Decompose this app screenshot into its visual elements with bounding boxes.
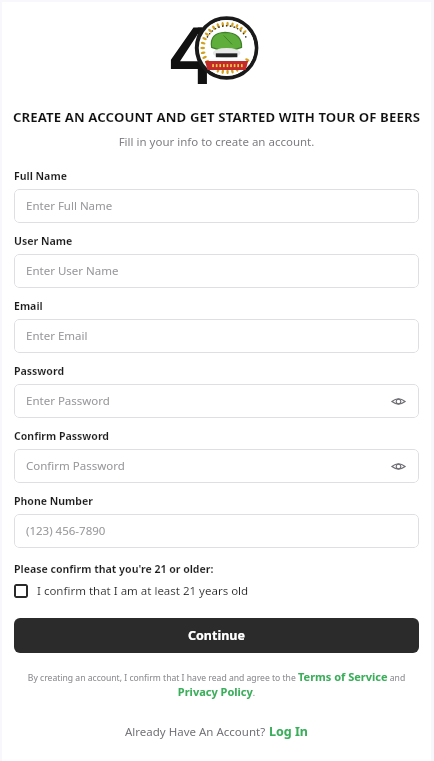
staticText: Already Have An Account?: [125, 724, 269, 740]
staticText: Enter Password: [26, 393, 110, 409]
button[interactable]: Show password: [387, 390, 409, 412]
button[interactable]: (123) 456-7890: [14, 514, 419, 548]
button[interactable]: Enter Email: [14, 319, 419, 353]
staticText: Enter User Name: [26, 263, 119, 279]
staticText: Password: [14, 364, 65, 378]
staticText: Please confirm that you're 21 or older:: [14, 562, 214, 576]
staticText: (123) 456-7890: [26, 523, 106, 539]
staticText: Log In: [269, 723, 308, 740]
button[interactable]: Enter Full Name: [14, 189, 419, 223]
staticText: User Name: [14, 234, 73, 248]
button[interactable]: Confirm Password: [14, 449, 419, 483]
button[interactable]: I confirm that I am at least 21 years ol…: [14, 583, 419, 599]
staticText: Fill in your info to create an account.: [2, 134, 431, 150]
button[interactable]: Enter Password: [14, 384, 419, 418]
staticText: Enter Email: [26, 328, 88, 344]
staticText: I confirm that I am at least 21 years ol…: [37, 583, 249, 599]
staticText: Enter Full Name: [26, 198, 113, 214]
staticText: By creating an account, I confirm that I…: [14, 669, 419, 699]
button[interactable]: Already Have An Account?: [125, 723, 308, 740]
staticText: Continue: [188, 627, 245, 644]
button[interactable]: By creating an account, I confirm that I…: [14, 669, 419, 699]
button[interactable]: Continue: [14, 618, 419, 653]
staticText: CREATE AN ACCOUNT AND GET STARTED WITH T…: [10, 108, 423, 126]
button[interactable]: Show password: [387, 455, 409, 477]
button[interactable]: Enter User Name: [14, 254, 419, 288]
staticText: Full Name: [14, 169, 67, 183]
staticText: Phone Number: [14, 494, 93, 508]
staticText: Email: [14, 299, 43, 313]
staticText: Confirm Password: [26, 458, 125, 474]
other: Tour of Beers 40 years logo: [169, 16, 265, 84]
staticText: Confirm Password: [14, 429, 110, 443]
